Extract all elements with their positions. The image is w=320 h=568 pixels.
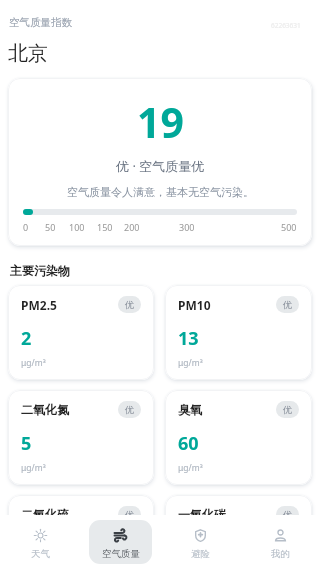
staticText: 62263631 — [271, 21, 301, 30]
button[interactable]: Air quality — [89, 520, 152, 564]
button[interactable]: 一氧化碳 — [165, 495, 312, 568]
staticText: PM2.5 — [21, 297, 57, 313]
staticText: PM10 — [178, 297, 211, 313]
button[interactable]: 优 — [276, 401, 299, 418]
staticText: 优 — [283, 509, 292, 520]
button[interactable]: 二氧化硫 — [8, 495, 154, 568]
staticText: 优 — [283, 299, 292, 310]
staticText: 500 — [281, 221, 297, 233]
staticText: 空气质量指数 — [9, 16, 72, 29]
staticText: 空气质量 — [102, 548, 140, 560]
staticText: 19 — [137, 94, 184, 150]
staticText: 0 — [23, 221, 29, 233]
button[interactable]: Weather — [9, 520, 72, 564]
staticText: 300 — [179, 221, 195, 233]
button[interactable]: 19 — [8, 78, 312, 246]
button[interactable]: PM2.5 — [8, 285, 154, 380]
button[interactable]: Profile — [249, 520, 312, 564]
staticText: 北京 — [8, 41, 48, 66]
staticText: μg/m³ — [21, 462, 46, 474]
staticText: 避险 — [191, 548, 210, 560]
staticText: 50 — [45, 221, 56, 233]
staticText: 主要污染物 — [10, 263, 70, 278]
button[interactable]: Safety — [169, 520, 232, 564]
staticText: 150 — [97, 221, 113, 233]
button[interactable]: 优 — [118, 401, 141, 418]
staticText: 200 — [124, 221, 140, 233]
staticText: 优 — [125, 509, 134, 520]
staticText: 13 — [178, 326, 199, 351]
staticText: 优 · 空气质量优 — [116, 157, 205, 175]
staticText: 100 — [69, 221, 85, 233]
staticText: 二氧化氮 — [21, 402, 69, 417]
button[interactable]: PM10 — [165, 285, 312, 380]
staticText: 60 — [178, 431, 199, 456]
staticText: μg/m³ — [21, 357, 46, 369]
button[interactable]: 优 — [276, 296, 299, 313]
button[interactable]: 臭氧 — [165, 390, 312, 485]
staticText: 空气质量令人满意，基本无空气污染。 — [67, 185, 254, 199]
button[interactable]: 二氧化氮 — [8, 390, 154, 485]
staticText: 我的 — [271, 548, 290, 560]
staticText: 臭氧 — [178, 402, 202, 417]
button[interactable]: 优 — [276, 506, 299, 523]
staticText: μg/m³ — [178, 357, 203, 369]
staticText: 优 — [125, 299, 134, 310]
button[interactable]: 优 — [118, 296, 141, 313]
staticText: 天气 — [31, 548, 50, 560]
staticText: 5 — [21, 431, 32, 456]
staticText: 二氧化硫 — [21, 507, 69, 522]
button[interactable]: 优 — [118, 506, 141, 523]
staticText: 优 — [125, 404, 134, 415]
staticText: 0.3 — [178, 536, 204, 561]
staticText: μg/m³ — [178, 462, 203, 474]
staticText: 一氧化碳 — [178, 507, 226, 522]
staticText: 优 — [283, 404, 292, 415]
staticText: 2 — [21, 326, 32, 351]
